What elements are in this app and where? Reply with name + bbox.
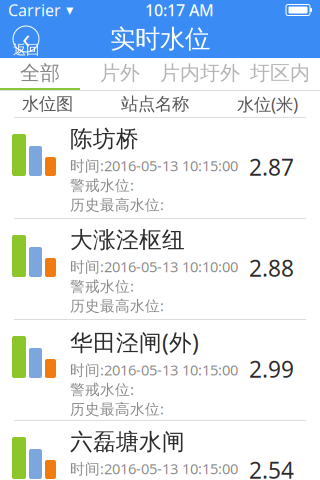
button[interactable]: 陈坊桥 — [0, 118, 320, 219]
button[interactable]: 片外 — [80, 58, 160, 88]
button[interactable]: 华田泾闸(外) — [0, 320, 320, 421]
staticText: 时间:2016-05-13 10:15:00 — [70, 459, 238, 478]
staticText: 六磊塘水闸 — [70, 428, 185, 456]
staticText: 实时水位 — [110, 23, 210, 54]
staticText: 全部 — [20, 61, 60, 85]
staticText: 警戒水位: — [70, 276, 134, 296]
staticText: 警戒水位: — [70, 175, 134, 195]
staticText: 大涨泾枢纽 — [70, 226, 185, 254]
staticText: 时间:2016-05-13 10:15:00 — [70, 360, 238, 380]
staticText: 水位图 — [22, 93, 73, 115]
button[interactable]: 六磊塘水闸 — [0, 421, 320, 480]
staticText: 2.54 — [249, 455, 294, 480]
staticText: 片外 — [100, 61, 140, 85]
staticText: 历史最高水位: — [70, 195, 164, 214]
staticText: 圩区内 — [250, 61, 310, 85]
staticText: 片内圩外 — [160, 61, 240, 85]
button[interactable]: 片内圩外 — [160, 58, 240, 88]
staticText: 站点名称 — [121, 93, 189, 115]
staticText: 时间:2016-05-13 10:15:00 — [70, 156, 238, 175]
staticText: 陈坊桥 — [70, 125, 139, 153]
staticText: ▾ — [61, 2, 73, 18]
button[interactable]: 圩区内 — [240, 58, 320, 88]
staticText: 水位(米) — [237, 92, 298, 115]
button[interactable]: 返回 — [4, 20, 48, 58]
staticText: 2.88 — [249, 253, 294, 283]
button[interactable]: 全部 — [0, 58, 80, 88]
staticText: 历史最高水位: — [70, 399, 164, 419]
staticText: 时间:2016-05-13 10:10:00 — [70, 257, 238, 276]
staticText: 华田泾闸(外) — [70, 327, 199, 357]
staticText: 返回 — [13, 42, 39, 58]
staticText: 警戒水位: — [70, 380, 134, 399]
staticText: 10:17 AM — [145, 0, 214, 21]
button[interactable]: 大涨泾枢纽 — [0, 219, 320, 320]
staticText: 历史最高水位: — [70, 296, 164, 315]
staticText: 2.87 — [249, 152, 294, 182]
staticText: 2.99 — [249, 354, 294, 384]
staticText: Carrier — [8, 0, 61, 21]
staticText: ‹ — [22, 20, 30, 56]
